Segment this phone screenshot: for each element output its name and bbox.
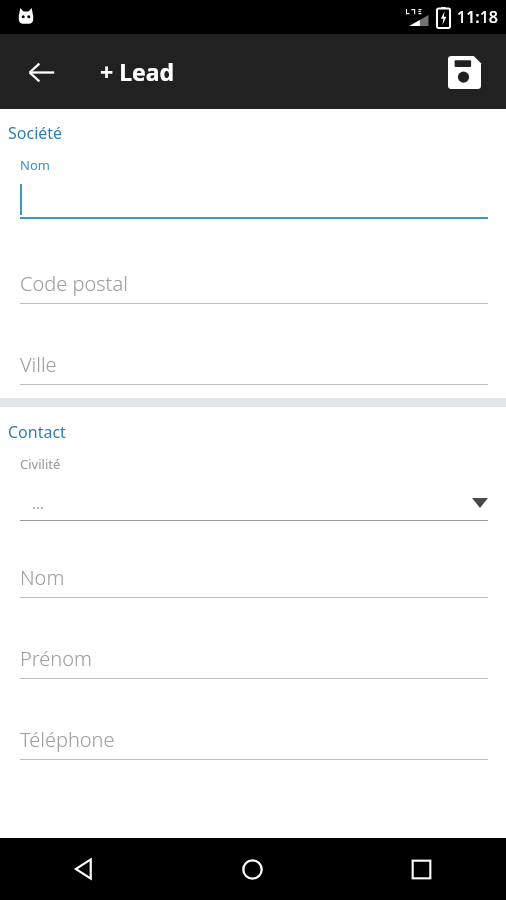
staticText: Prénom [20, 645, 92, 672]
button[interactable]: Civilité [0, 455, 506, 521]
staticText: Ville [20, 351, 57, 378]
staticText: + Lead [100, 56, 175, 87]
button[interactable]: Nom [0, 564, 506, 598]
button[interactable]: Back [10, 41, 72, 103]
button[interactable]: Nom [0, 156, 506, 219]
button[interactable]: Code postal [0, 270, 506, 304]
button[interactable]: Ville [0, 351, 506, 385]
staticText: Société [8, 122, 63, 144]
staticText: Téléphone [20, 726, 115, 753]
button[interactable]: Back [0, 838, 168, 900]
button[interactable]: Prénom [0, 645, 506, 679]
staticText: ... [32, 493, 45, 513]
staticText: Nom [20, 156, 50, 174]
button[interactable]: Téléphone [0, 726, 506, 760]
staticText: 11:18 [457, 6, 498, 28]
button[interactable]: Home [168, 838, 337, 900]
button[interactable]: Save [436, 44, 492, 100]
staticText: Code postal [20, 270, 128, 297]
staticText: Nom [20, 564, 65, 591]
staticText: Contact [8, 421, 66, 443]
button[interactable]: Recent apps [337, 838, 506, 900]
staticText: Civilité [20, 455, 61, 473]
